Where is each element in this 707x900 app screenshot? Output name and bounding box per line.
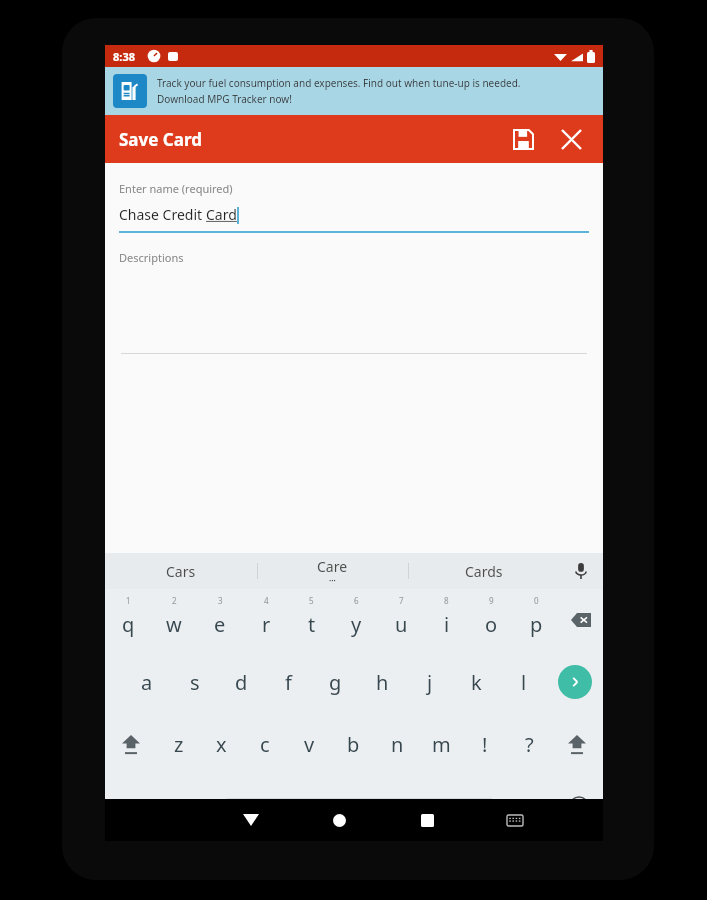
staticText: Track your fuel consumption and expenses… [157, 76, 521, 90]
button[interactable]: 5 [289, 589, 334, 651]
staticText: Descriptions [119, 250, 184, 265]
staticText: n [391, 731, 404, 758]
button[interactable]: 4 [243, 589, 289, 651]
button[interactable]: c [243, 713, 287, 775]
button[interactable]: Close [551, 119, 591, 159]
button[interactable]: Track your fuel consumption and expenses… [105, 67, 603, 115]
button[interactable]: Hide keyboard [207, 799, 295, 841]
staticText: u [395, 611, 408, 638]
staticText: Cards [465, 562, 503, 581]
button[interactable]: Cards [408, 553, 559, 589]
button[interactable]: Voice input [559, 553, 603, 589]
button[interactable]: . [511, 775, 555, 837]
button[interactable]: Shift [551, 713, 603, 775]
button[interactable]: Backspace [559, 589, 603, 651]
staticText: ? [525, 731, 534, 758]
button[interactable]: , [163, 775, 207, 837]
button[interactable]: x [200, 713, 243, 775]
button[interactable]: ! [463, 713, 507, 775]
staticText: 5 [309, 595, 314, 606]
button[interactable]: z [157, 713, 200, 775]
button[interactable]: 6 [334, 589, 379, 651]
staticText: e [214, 611, 226, 638]
button[interactable]: k [453, 651, 500, 713]
staticText: k [471, 669, 482, 696]
staticText: y [351, 611, 362, 638]
button[interactable]: l [500, 651, 547, 713]
button[interactable]: Home [295, 799, 383, 841]
button[interactable]: h [359, 651, 406, 713]
button[interactable]: 1 [105, 589, 151, 651]
staticText: 1 [126, 595, 131, 606]
staticText: v [304, 731, 315, 758]
staticText: x [216, 731, 227, 758]
staticText: p [530, 611, 543, 638]
button[interactable]: d [218, 651, 265, 713]
staticText: 7 [399, 595, 404, 606]
staticText: j [427, 669, 433, 696]
button[interactable]: v [287, 713, 331, 775]
button[interactable]: ? [507, 713, 551, 775]
staticText: d [235, 669, 248, 696]
staticText: o [485, 611, 498, 638]
staticText: t [308, 611, 316, 638]
staticText: 6 [354, 595, 359, 606]
button[interactable]: f [265, 651, 312, 713]
button[interactable] [207, 775, 511, 837]
button[interactable]: Save [503, 119, 543, 159]
staticText: h [376, 669, 389, 696]
button[interactable]: 9 [469, 589, 514, 651]
button[interactable]: Next [547, 651, 603, 713]
button[interactable]: b [331, 713, 375, 775]
button[interactable]: Cars [105, 553, 257, 589]
button[interactable]: 3 [197, 589, 243, 651]
staticText: ! [482, 731, 488, 758]
staticText: 3 [218, 595, 223, 606]
staticText: w [166, 611, 182, 638]
button[interactable]: 7 [379, 589, 424, 651]
staticText: r [262, 611, 271, 638]
staticText: b [347, 731, 360, 758]
button[interactable]: ?123 [105, 775, 163, 837]
staticText: Care [317, 557, 348, 576]
staticText: g [329, 669, 342, 696]
button[interactable]: n [375, 713, 419, 775]
button[interactable]: 2 [151, 589, 197, 651]
staticText: Chase Credit [119, 205, 206, 224]
button[interactable]: Chase Credit [119, 205, 589, 224]
button[interactable]: 0 [514, 589, 559, 651]
staticText: Enter name (required) [119, 181, 233, 196]
button[interactable]: m [419, 713, 463, 775]
staticText: Download MPG Tracker now! [157, 92, 292, 106]
button[interactable]: Shift [105, 713, 157, 775]
staticText: s [190, 669, 200, 696]
staticText: 8:38 [113, 49, 135, 64]
staticText: a [141, 669, 153, 696]
button[interactable]: Emoji [555, 775, 603, 837]
button[interactable]: 8 [424, 589, 469, 651]
staticText: c [260, 731, 270, 758]
staticText: Save Card [119, 128, 202, 151]
staticText: Cars [166, 562, 196, 581]
staticText: . [531, 794, 536, 819]
staticText: m [432, 731, 451, 758]
staticText: z [174, 731, 184, 758]
button[interactable]: j [406, 651, 453, 713]
staticText: ?123 [120, 797, 148, 815]
staticText: 0 [534, 595, 539, 606]
staticText: ••• [329, 577, 336, 585]
button[interactable]: Switch keyboard [471, 799, 559, 841]
button[interactable]: Recents [383, 799, 471, 841]
staticText: , [183, 794, 188, 819]
button[interactable]: s [171, 651, 218, 713]
staticText: Card [206, 205, 237, 224]
staticText: 4 [264, 595, 269, 606]
staticText: 2 [172, 595, 177, 606]
button[interactable]: Care [257, 553, 408, 589]
staticText: 9 [489, 595, 494, 606]
staticText: l [521, 669, 527, 696]
button[interactable]: g [312, 651, 359, 713]
staticText: q [122, 611, 135, 638]
button[interactable]: a [123, 651, 171, 713]
